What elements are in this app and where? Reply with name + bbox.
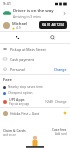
button[interactable]: Michael — [3, 19, 67, 31]
staticText: 9:41 — [3, 1, 11, 6]
staticText: 4.9 — [16, 26, 21, 30]
staticText: KA 01 AB 1234 — [42, 23, 64, 27]
button[interactable]: Cash payment — [3, 54, 67, 64]
staticText: ₹240 — [45, 99, 53, 104]
staticText: Hobbs First + Govt — [10, 111, 40, 116]
staticText: Claim & Cards — [3, 128, 26, 133]
staticText: Add card — [55, 132, 67, 136]
button[interactable]: Call driver — [0, 32, 35, 43]
staticText: Fare — [3, 77, 12, 83]
button[interactable]: Personal — [3, 64, 67, 74]
staticText: Arriving in 3 mins — [13, 14, 41, 19]
staticText: Michael — [12, 21, 28, 26]
button[interactable]: Pickup at Main Street — [3, 44, 67, 54]
staticText: Pickup at Main Street — [10, 47, 46, 52]
staticText: Change — [55, 100, 67, 104]
staticText: Cheapest option — [8, 91, 33, 95]
staticText: Cash payment — [10, 57, 35, 62]
staticText: Nearby stop saves time — [8, 85, 43, 89]
staticText: Change — [54, 67, 67, 72]
button[interactable]: Driver is on the way — [3, 7, 67, 19]
button[interactable]: Message driver — [35, 32, 70, 43]
staticText: Pay via any app — [9, 102, 30, 106]
staticText: UPI Apps — [9, 97, 25, 102]
staticText: and so on — [3, 133, 16, 137]
staticText: Driver is on the way — [13, 8, 54, 14]
staticText: Personal — [10, 67, 25, 72]
staticText: Case fees — [52, 128, 67, 132]
button[interactable]: UPI Apps — [3, 96, 67, 107]
